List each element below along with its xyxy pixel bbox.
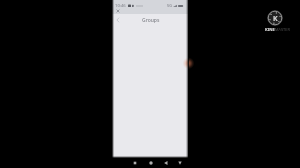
button[interactable]: Add group: [177, 56, 191, 70]
staticText: Groups: [142, 17, 160, 24]
staticText: KINE: [265, 27, 275, 32]
button[interactable]: Back: [162, 159, 170, 167]
staticText: 10:46: [115, 3, 126, 9]
button[interactable]: Home: [147, 159, 155, 167]
staticText: MASTER: [275, 27, 290, 32]
button[interactable]: Back: [113, 15, 123, 25]
button[interactable]: Recents: [131, 159, 139, 167]
staticText: 5G: [167, 3, 172, 8]
staticText: K: [273, 14, 278, 23]
button[interactable]: Hide keyboard: [176, 159, 184, 167]
